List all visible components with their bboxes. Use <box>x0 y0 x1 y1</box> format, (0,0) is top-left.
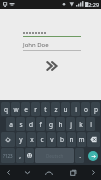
button[interactable]: Emoji <box>25 148 34 163</box>
button[interactable]: z <box>51 102 60 116</box>
button[interactable]: Previous <box>0 165 17 180</box>
staticText: m <box>78 135 85 144</box>
button[interactable]: v <box>47 132 56 147</box>
staticText: e <box>24 105 28 114</box>
button[interactable]: Shift <box>1 132 15 147</box>
button[interactable]: a <box>6 117 15 131</box>
staticText: k <box>79 120 83 129</box>
staticText: ?123 <box>3 153 13 159</box>
staticText: Deutsch <box>46 153 64 159</box>
button[interactable]: . <box>75 148 84 163</box>
button[interactable]: q <box>1 102 10 116</box>
staticText: p <box>94 105 98 114</box>
button[interactable]: l <box>86 117 95 131</box>
staticText: i <box>75 105 77 114</box>
button[interactable]: f <box>36 117 45 131</box>
button[interactable]: d <box>26 117 35 131</box>
button[interactable] <box>23 26 81 36</box>
button[interactable]: Next <box>85 165 101 180</box>
staticText: h <box>58 120 63 129</box>
staticText: d <box>29 120 33 129</box>
button[interactable]: e <box>21 102 30 116</box>
staticText: y <box>19 135 23 144</box>
button[interactable]: r <box>31 102 40 116</box>
staticText: j <box>70 120 72 129</box>
button[interactable]: Home <box>37 165 61 180</box>
button[interactable]: g <box>46 117 55 131</box>
staticText: q <box>4 105 8 114</box>
button[interactable]: u <box>61 102 70 116</box>
button[interactable]: Continue <box>44 58 60 74</box>
button[interactable]: Backspace <box>87 132 100 147</box>
button[interactable]: j <box>66 117 75 131</box>
button[interactable]: i <box>71 102 80 116</box>
staticText: 22:29 <box>85 1 100 8</box>
staticText: n <box>69 135 74 144</box>
button[interactable]: y <box>16 132 26 147</box>
staticText: a <box>9 120 13 129</box>
button[interactable]: John Doe <box>23 41 81 50</box>
staticText: s <box>19 120 23 129</box>
staticText: l <box>90 120 92 129</box>
button[interactable]: p <box>91 102 100 116</box>
staticText: v <box>50 135 54 144</box>
staticText: . <box>79 151 81 160</box>
button[interactable]: m <box>77 132 86 147</box>
staticText: r <box>34 105 37 114</box>
button[interactable]: b <box>57 132 66 147</box>
staticText: John Doe <box>23 41 49 49</box>
button[interactable]: Enter <box>85 148 100 163</box>
button[interactable]: o <box>81 102 90 116</box>
staticText: o <box>84 105 88 114</box>
staticText: x <box>30 135 34 144</box>
staticText: u <box>63 105 68 114</box>
staticText: z <box>54 105 58 114</box>
button[interactable]: h <box>56 117 65 131</box>
staticText: w <box>13 105 19 114</box>
staticText: b <box>60 135 64 144</box>
button[interactable]: x <box>27 132 36 147</box>
button[interactable]: Recents <box>61 165 85 180</box>
button[interactable]: s <box>16 117 25 131</box>
staticText: , <box>19 151 21 160</box>
staticText: g <box>49 120 53 129</box>
button[interactable]: k <box>76 117 85 131</box>
staticText: f <box>39 120 42 129</box>
button[interactable]: c <box>37 132 46 147</box>
button[interactable]: w <box>11 102 20 116</box>
button[interactable]: , <box>16 148 24 163</box>
staticText: t <box>44 105 47 114</box>
staticText: c <box>40 135 44 144</box>
button[interactable]: t <box>41 102 50 116</box>
button[interactable]: n <box>67 132 76 147</box>
button[interactable]: ?123 <box>1 148 15 163</box>
button[interactable]: Hide keyboard <box>17 165 37 180</box>
